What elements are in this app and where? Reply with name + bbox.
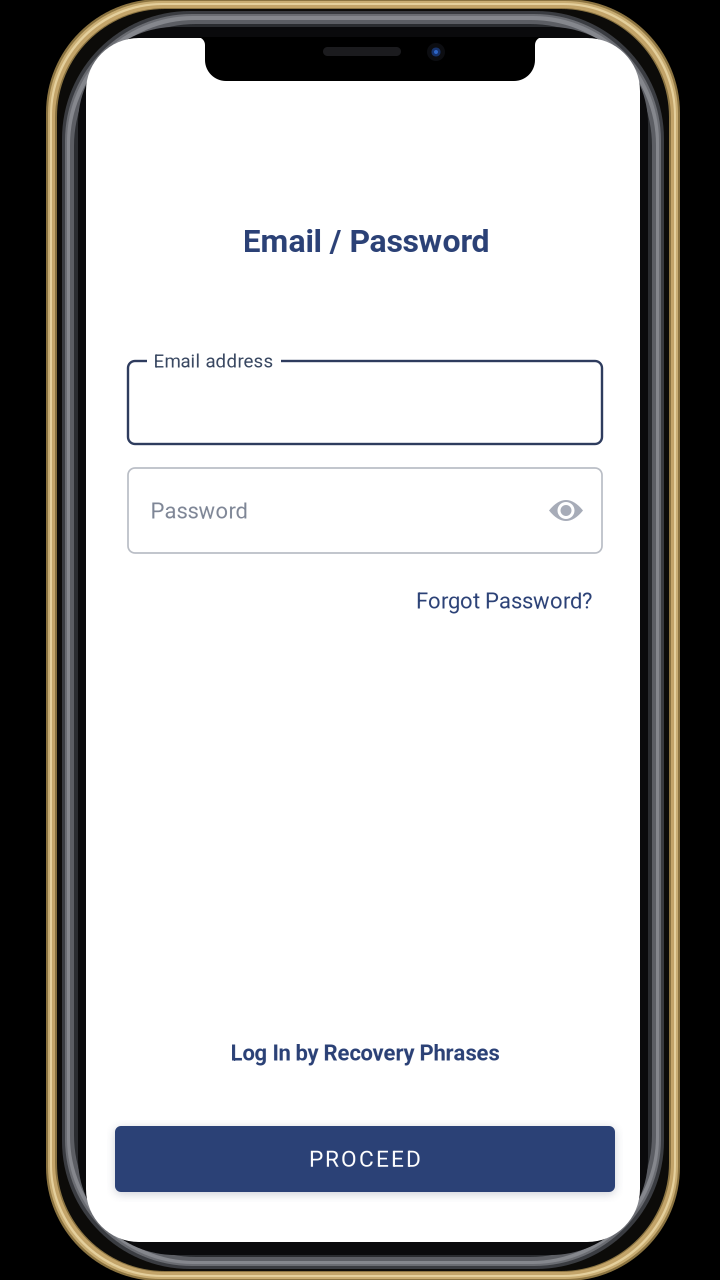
button[interactable]: Log In by Recovery Phrases: [195, 1033, 535, 1073]
button[interactable]: Forgot Password?: [392, 581, 592, 621]
staticText: Log In by Recovery Phrases: [230, 1040, 499, 1066]
staticText: Forgot Password?: [416, 588, 592, 614]
button[interactable]: Show password: [538, 482, 594, 538]
staticText: P R O C E E D: [309, 1146, 421, 1172]
button[interactable]: P R O C E E D: [115, 1126, 615, 1192]
staticText: Password: [150, 498, 247, 524]
staticText: Email address: [154, 350, 274, 372]
staticText: Email / Password: [242, 222, 489, 260]
